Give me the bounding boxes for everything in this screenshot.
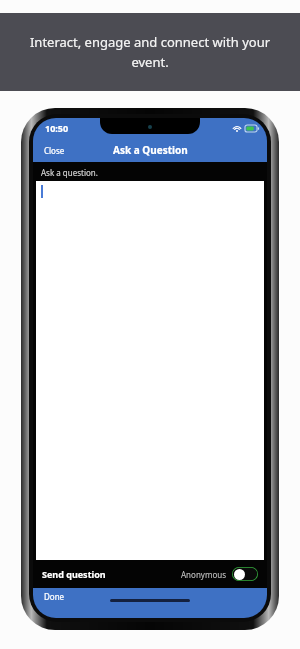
button[interactable]: Done — [33, 588, 75, 605]
staticText: Ask a question. — [41, 167, 98, 178]
button[interactable] — [36, 181, 264, 560]
staticText: Done — [44, 591, 65, 602]
staticText: Interact, engage and connect with your e… — [16, 33, 284, 71]
button[interactable]: Anonymous toggle — [232, 567, 258, 581]
button[interactable]: Send question — [42, 568, 106, 580]
staticText: 10:50 — [45, 122, 69, 134]
staticText: Close — [44, 145, 65, 156]
staticText: Anonymous — [181, 569, 227, 580]
button[interactable]: Close — [33, 141, 76, 160]
staticText: Ask a Question — [113, 143, 188, 157]
staticText: Send question — [42, 568, 106, 580]
